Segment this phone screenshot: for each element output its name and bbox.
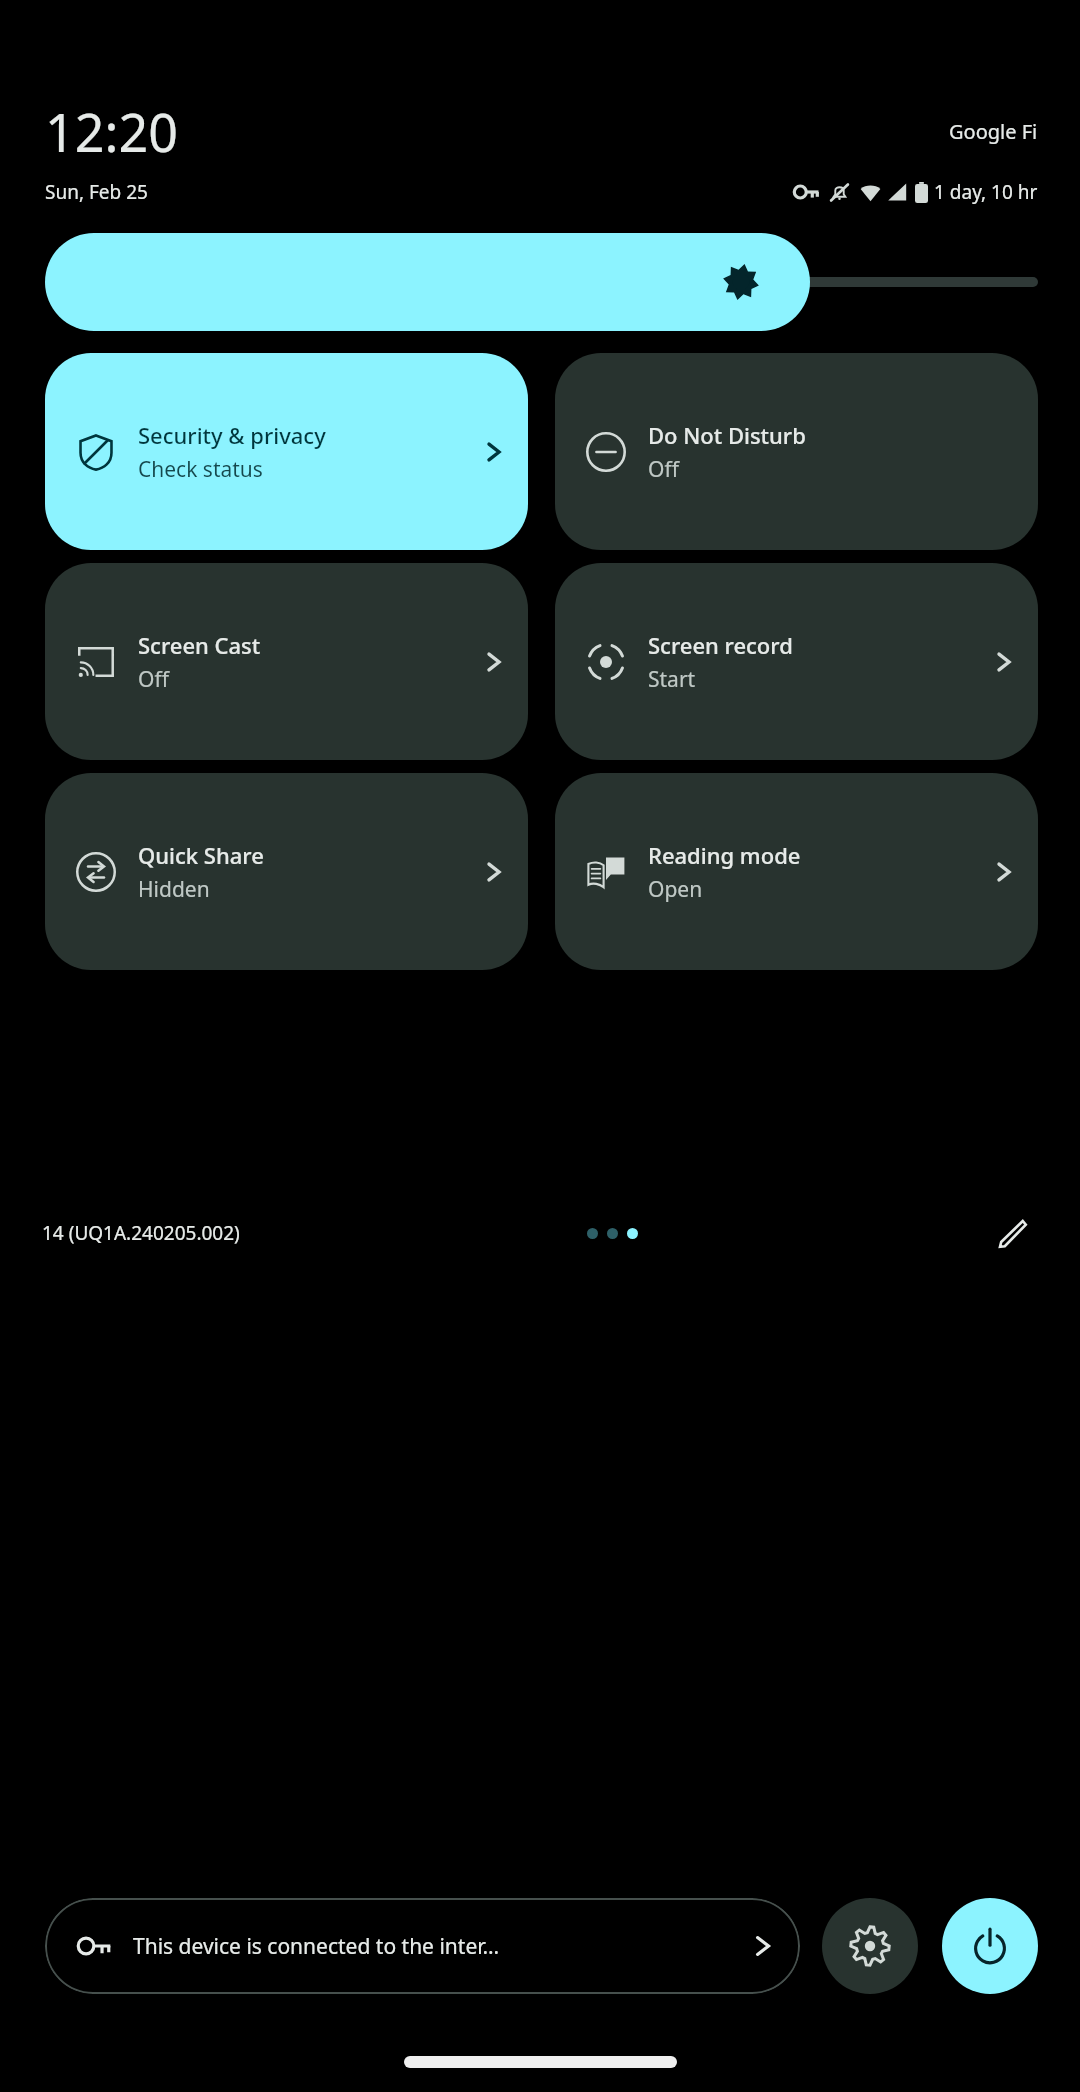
staticText: Reading mode	[648, 840, 801, 870]
staticText: Security & privacy	[138, 420, 326, 450]
staticText: 12:20	[45, 96, 178, 167]
button[interactable]: Screen Cast	[45, 563, 528, 760]
button[interactable]: Screen record	[555, 563, 1038, 760]
button[interactable]: Do Not Disturb	[555, 353, 1038, 550]
staticText: Hidden	[138, 875, 210, 904]
staticText: Quick Share	[138, 840, 264, 870]
staticText: Do Not Disturb	[648, 420, 806, 450]
staticText: Google Fi	[949, 118, 1038, 145]
button[interactable]: Reading mode	[555, 773, 1038, 970]
staticText: 1 day, 10 hr	[934, 179, 1038, 205]
button[interactable]: Quick Share	[45, 773, 528, 970]
button[interactable]: Edit tiles	[986, 1207, 1038, 1259]
staticText: Off	[138, 665, 169, 694]
staticText: 14 (UQ1A.240205.002)	[42, 1220, 240, 1246]
staticText: Open	[648, 875, 703, 904]
button[interactable]: This device is connected to the inter…	[45, 1898, 800, 1994]
staticText: Screen record	[648, 630, 793, 660]
staticText: This device is connected to the inter…	[133, 1932, 500, 1961]
button[interactable]: Settings	[822, 1898, 918, 1994]
button[interactable]: Brightness	[45, 233, 810, 331]
staticText: Start	[648, 665, 696, 694]
staticText: Sun, Feb 25	[45, 179, 148, 205]
staticText: Check status	[138, 455, 263, 484]
staticText: Screen Cast	[138, 630, 261, 660]
button[interactable]: Power	[942, 1898, 1038, 1994]
staticText: Off	[648, 455, 679, 484]
button[interactable]: Security & privacy	[45, 353, 528, 550]
